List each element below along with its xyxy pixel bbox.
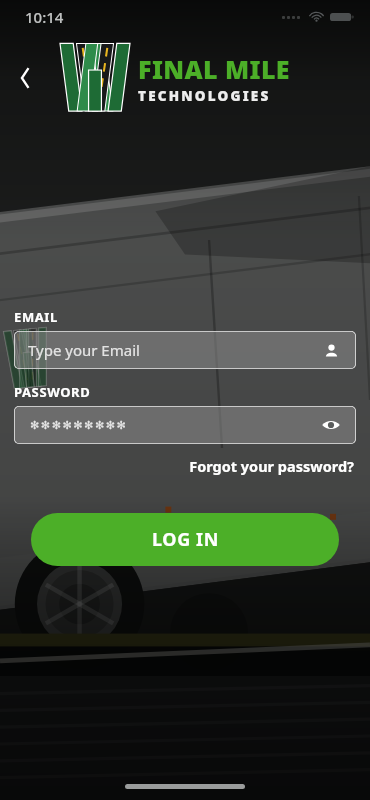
button[interactable]: Back bbox=[6, 59, 44, 97]
button[interactable]: Forgot your password? bbox=[187, 454, 356, 478]
staticText: Forgot your password? bbox=[189, 456, 354, 476]
staticText: FINAL MILE bbox=[138, 52, 290, 86]
staticText: 10:14 bbox=[25, 7, 64, 27]
staticText: ✻✻✻✻✻✻✻✻✻ bbox=[30, 419, 128, 432]
staticText: Type your Email bbox=[28, 340, 140, 360]
staticText: EMAIL bbox=[14, 308, 58, 326]
button[interactable]: ✻✻✻✻✻✻✻✻✻ bbox=[14, 406, 356, 444]
staticText: LOG IN bbox=[152, 527, 219, 552]
button[interactable]: LOG IN bbox=[31, 513, 339, 566]
button[interactable]: Show password bbox=[318, 412, 344, 438]
staticText: PASSWORD bbox=[14, 383, 91, 401]
staticText: TECHNOLOGIES bbox=[138, 87, 271, 105]
button[interactable]: Type your Email bbox=[14, 331, 356, 369]
